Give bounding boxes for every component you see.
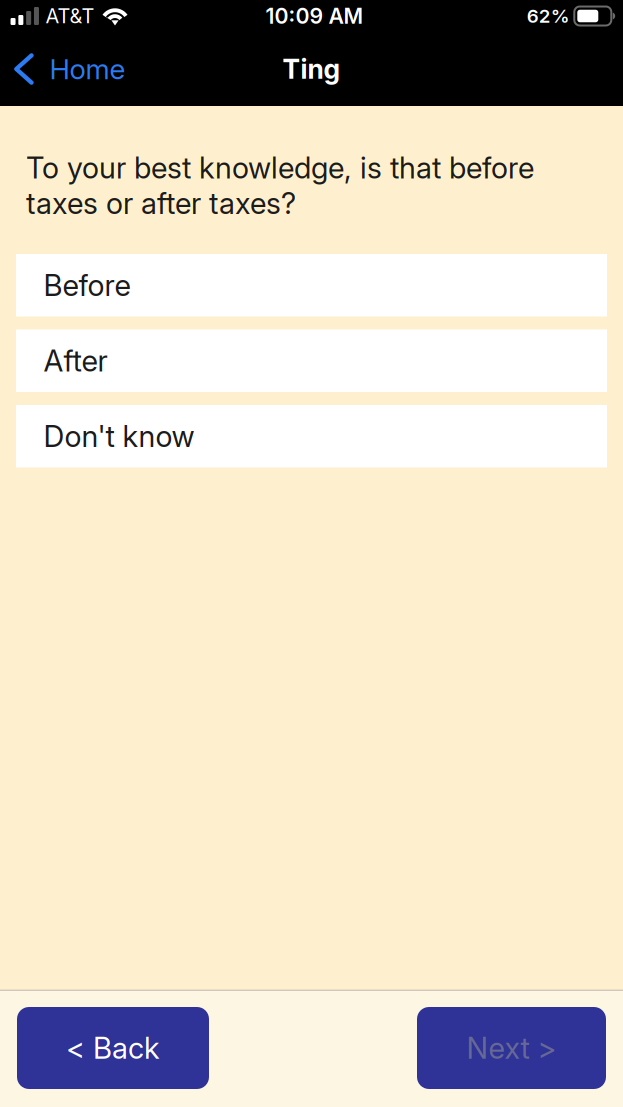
staticText: Ting [282,53,340,85]
staticText: Next > [466,1030,556,1066]
button[interactable]: Don't know [16,405,607,467]
button[interactable]: After [16,329,607,392]
button[interactable]: Back to Home [0,34,141,104]
button[interactable]: Before [16,254,607,316]
staticText: Before [43,267,130,303]
staticText: < Back [66,1030,160,1066]
staticText: After [43,343,107,378]
staticText: AT&T [45,4,94,28]
staticText: 10:09 AM [265,3,363,29]
staticText: Home [49,52,125,86]
staticText: Don't know [43,418,194,454]
staticText: To your best knowledge, is that before t… [26,150,534,221]
staticText: 62% [527,5,570,27]
button[interactable]: < Back [17,1007,209,1089]
button[interactable]: Next > [417,1007,606,1089]
